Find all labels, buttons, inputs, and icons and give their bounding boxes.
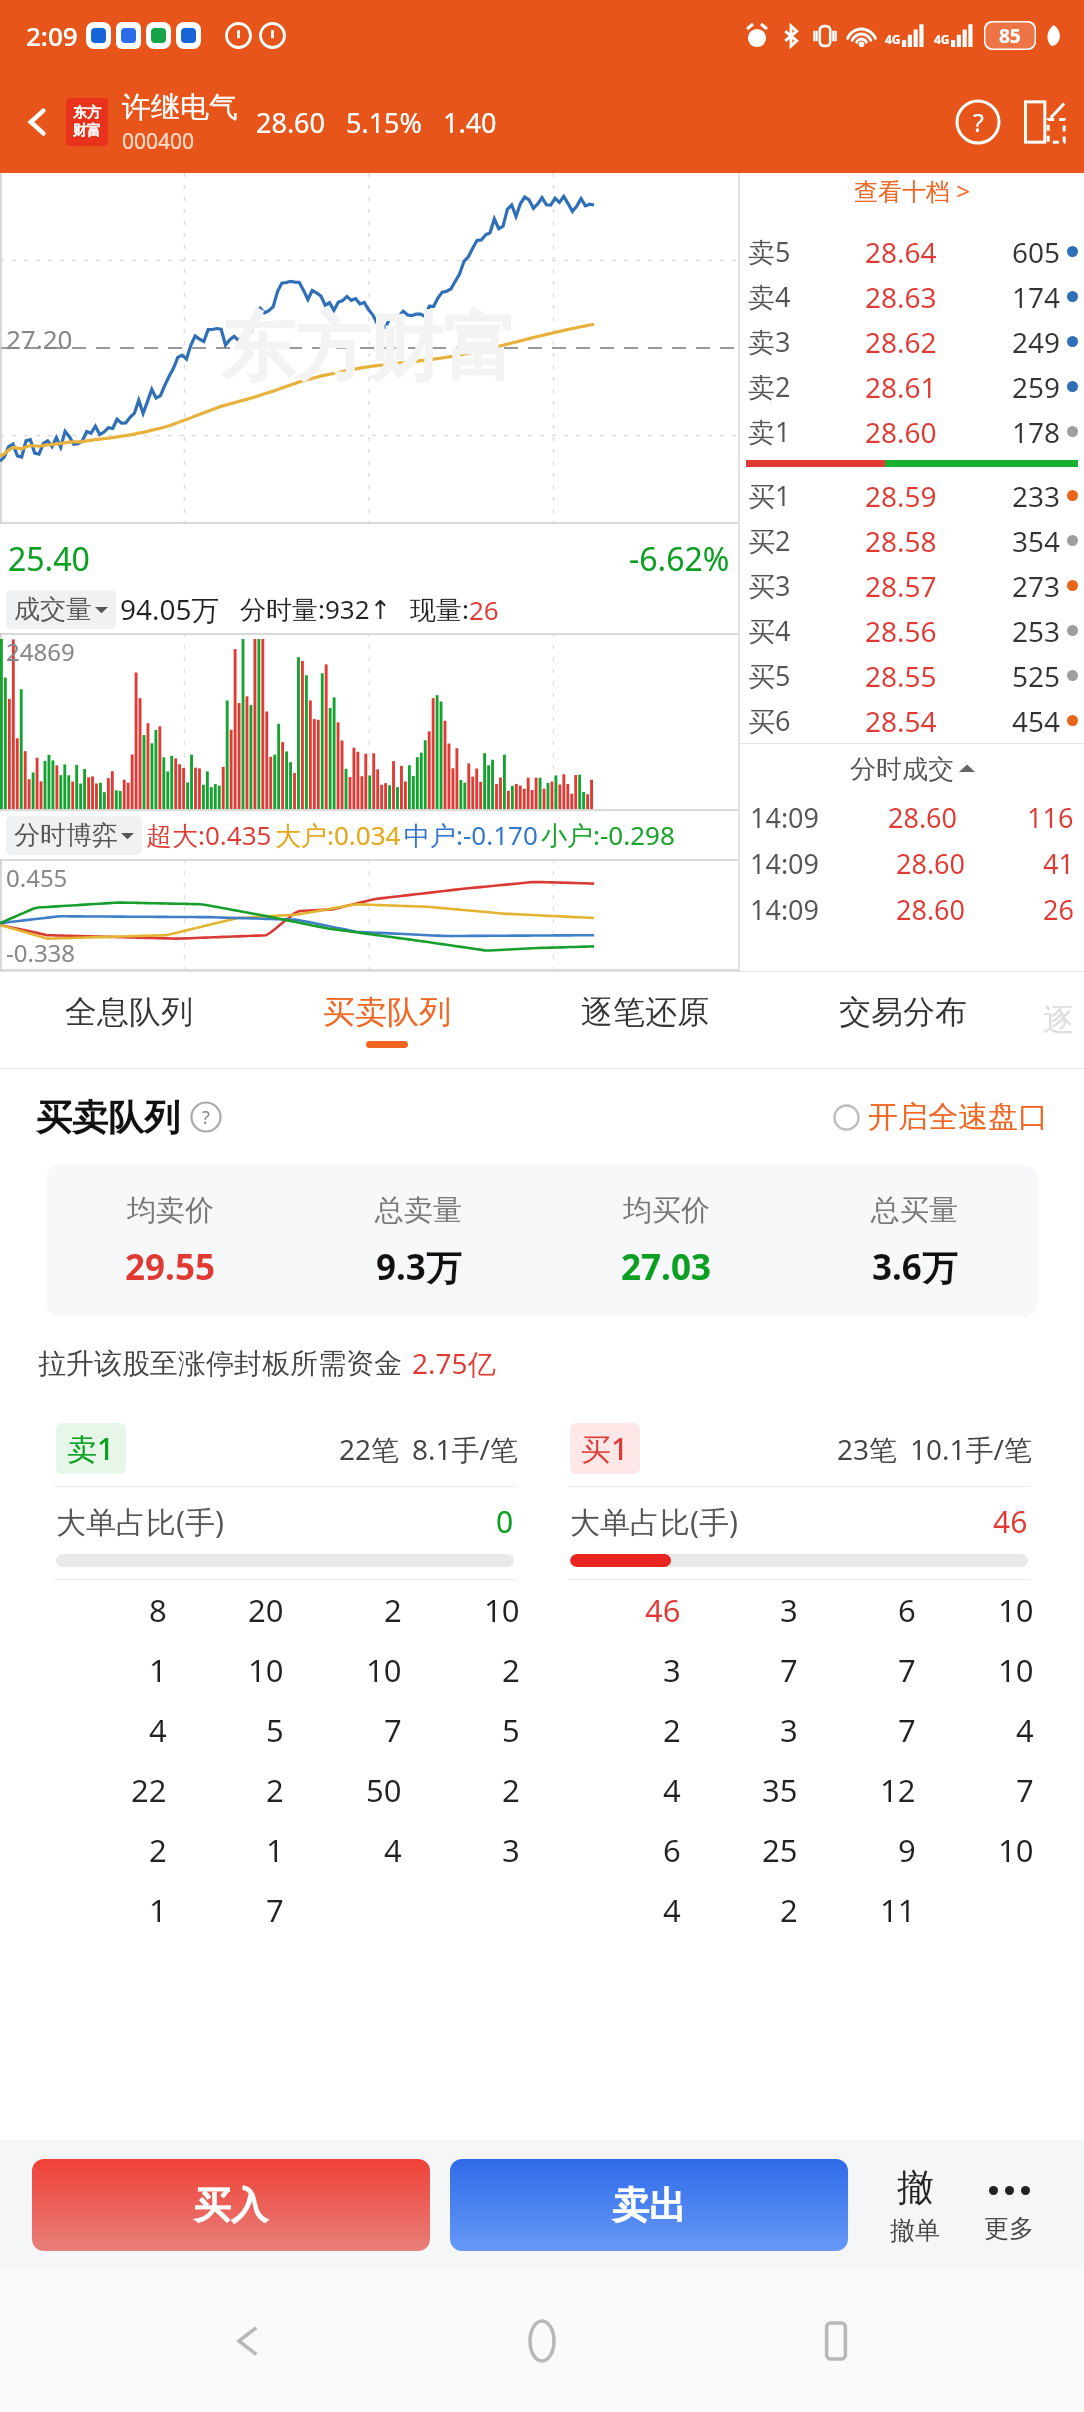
button[interactable]: 买卖队列: [258, 971, 516, 1069]
button[interactable]: 卖1: [748, 409, 1078, 454]
button[interactable]: 查看十档 >: [740, 173, 1084, 207]
staticText: 000400: [122, 127, 195, 156]
staticText: 查看十档 >: [854, 174, 970, 207]
staticText: 小户:-0.298: [541, 817, 675, 853]
button[interactable]: Home: [496, 2295, 588, 2387]
staticText: 7: [1016, 1769, 1034, 1811]
button[interactable]: 逐笔还原: [516, 971, 774, 1069]
button[interactable]: 14:09: [750, 840, 1074, 886]
button[interactable]: 买4: [748, 608, 1078, 653]
button[interactable]: 总卖量: [294, 1192, 542, 1291]
button[interactable]: 东方: [66, 98, 108, 146]
staticText: 1.40: [443, 104, 497, 141]
staticText: 7: [384, 1709, 402, 1751]
staticText: 28.62: [865, 323, 937, 361]
staticText: 超大:0.435: [146, 817, 272, 853]
staticText: 5.15%: [346, 104, 423, 141]
button[interactable]: 卖3: [748, 319, 1078, 364]
staticText: 逐笔还原: [581, 992, 709, 1032]
button[interactable]: 卖4: [748, 274, 1078, 319]
staticText: 买5: [748, 657, 791, 694]
button[interactable]: Add to watchlist: [1016, 94, 1072, 150]
button[interactable]: 卖1: [40, 1409, 530, 1946]
staticText: 5: [266, 1709, 284, 1751]
button[interactable]: 交易分布: [774, 971, 1032, 1069]
staticText: 525: [1012, 657, 1061, 695]
button[interactable]: 买3: [748, 563, 1078, 608]
button[interactable]: 开启全速盘口: [833, 1098, 1048, 1136]
staticText: 28.61: [865, 368, 937, 406]
staticText: 许继电气: [122, 89, 238, 126]
button[interactable]: 买6: [748, 698, 1078, 743]
staticText: 12: [880, 1769, 916, 1811]
staticText: 29.55: [125, 1243, 215, 1291]
staticText: 4: [1016, 1709, 1034, 1751]
button[interactable]: 撤: [872, 2164, 958, 2246]
button[interactable]: 买5: [748, 653, 1078, 698]
staticText: 2: [502, 1769, 520, 1811]
staticText: 4: [384, 1829, 402, 1871]
button[interactable]: Help: [950, 94, 1006, 150]
staticText: 10: [484, 1589, 520, 1631]
staticText: 卖1: [67, 1428, 115, 1469]
button[interactable]: Back: [202, 2295, 294, 2387]
button[interactable]: 成交量: [6, 590, 116, 629]
staticText: 6: [898, 1589, 916, 1631]
button[interactable]: Recents: [790, 2295, 882, 2387]
button[interactable]: 总买量: [790, 1192, 1038, 1291]
button[interactable]: 更多: [966, 2167, 1052, 2244]
button[interactable]: 14:09: [750, 886, 1074, 932]
button[interactable]: 卖出: [450, 2159, 848, 2251]
staticText: 27.03: [621, 1243, 711, 1291]
staticText: 3: [502, 1829, 520, 1871]
staticText: 46: [645, 1589, 681, 1631]
button[interactable]: 均卖价: [46, 1192, 294, 1291]
staticText: 9.3万: [376, 1243, 461, 1291]
staticText: 分时量:932↑: [240, 591, 392, 627]
staticText: 22笔: [339, 1430, 400, 1468]
staticText: 东方财富: [221, 302, 517, 395]
staticText: 0: [496, 1501, 514, 1542]
staticText: 2: [149, 1829, 167, 1871]
button[interactable]: 卖2: [748, 364, 1078, 409]
staticText: 卖4: [748, 278, 791, 315]
button[interactable]: 14:09: [750, 794, 1074, 840]
staticText: 成交量: [14, 593, 92, 626]
button[interactable]: 分时成交: [740, 744, 1084, 794]
button[interactable]: 分时博弈: [6, 816, 142, 855]
button[interactable]: Back: [12, 96, 64, 148]
staticText: 买卖队列: [36, 1095, 180, 1140]
staticText: 10: [998, 1649, 1034, 1691]
button[interactable]: 均买价: [542, 1192, 790, 1291]
button[interactable]: 买1: [554, 1409, 1044, 1946]
staticText: 均卖价: [127, 1192, 214, 1229]
staticText: 卖出: [612, 2182, 686, 2229]
staticText: 41: [1043, 845, 1074, 882]
staticText: 10.1手/笔: [910, 1430, 1032, 1468]
staticText: 24869: [6, 635, 75, 668]
staticText: 10: [998, 1829, 1034, 1871]
staticText: 605: [1012, 233, 1061, 271]
staticText: 1: [149, 1649, 167, 1691]
staticText: 28.60: [865, 413, 937, 451]
staticText: 大户:0.034: [275, 817, 401, 853]
staticText: 买卖队列: [323, 992, 451, 1032]
staticText: 撤单: [890, 2215, 940, 2246]
button[interactable]: 全息队列: [0, 971, 258, 1069]
staticText: 116: [1027, 799, 1074, 836]
button[interactable]: 买入: [32, 2159, 430, 2251]
staticText: 2: [502, 1649, 520, 1691]
staticText: 354: [1012, 522, 1061, 560]
staticText: 0.455: [6, 861, 68, 894]
staticText: 27.20: [6, 321, 73, 356]
button[interactable]: 买2: [748, 518, 1078, 563]
staticText: 买4: [748, 612, 791, 649]
staticText: 3: [780, 1589, 798, 1631]
staticText: 3.6万: [872, 1243, 957, 1291]
button[interactable]: 买1: [748, 473, 1078, 518]
button[interactable]: 卖5: [748, 229, 1078, 274]
staticText: 财富: [73, 122, 101, 140]
staticText: 2.75亿: [412, 1344, 496, 1382]
button[interactable]: 帮助: [190, 1101, 222, 1133]
staticText: 8: [149, 1589, 167, 1631]
